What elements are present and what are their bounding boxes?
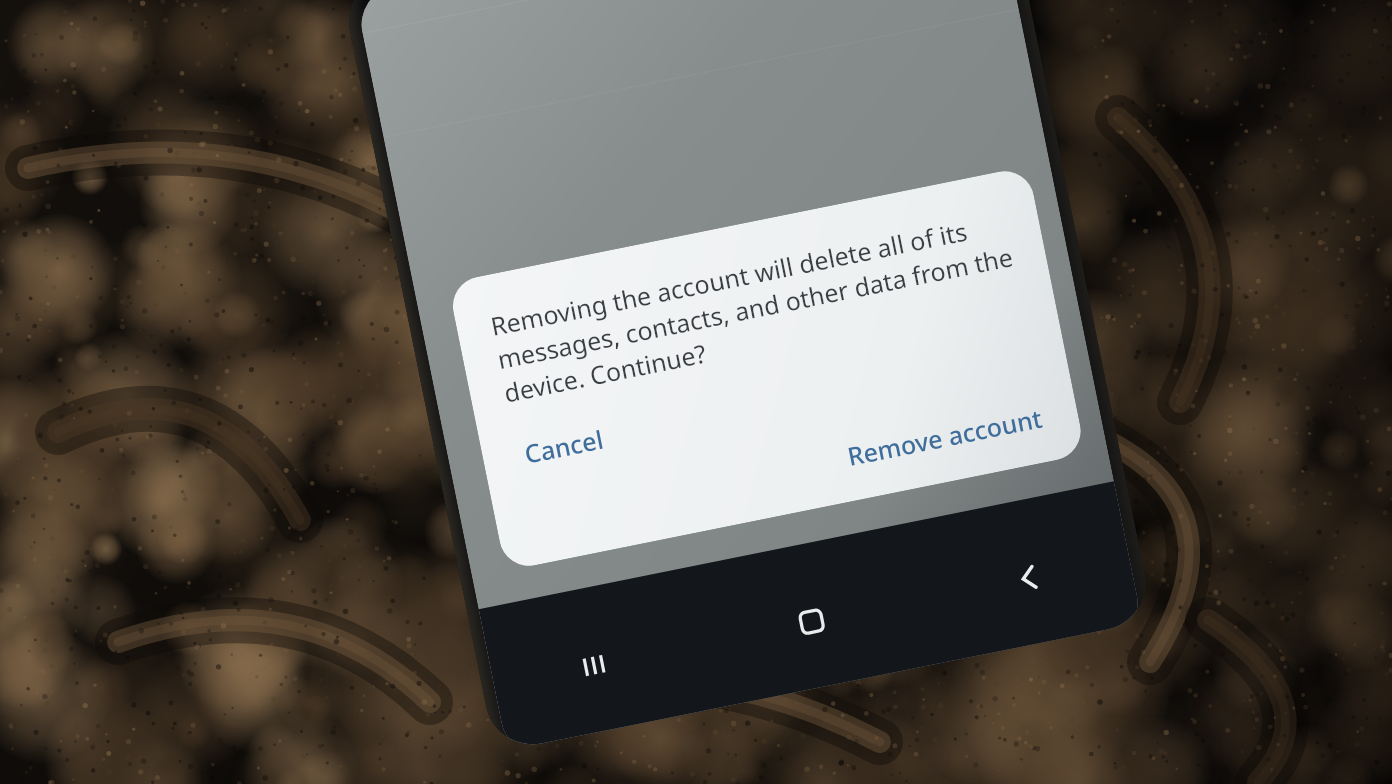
button[interactable]: Home [760, 570, 863, 673]
button[interactable]: Back [977, 526, 1081, 630]
staticText: Cancel [521, 422, 607, 471]
staticText: Remove account [844, 400, 1045, 473]
button[interactable]: Recent apps [542, 614, 646, 717]
button[interactable]: Cancel [512, 410, 616, 482]
button[interactable]: Remove account [833, 389, 1057, 485]
staticText: Removing the account will delete all of … [488, 204, 1029, 409]
